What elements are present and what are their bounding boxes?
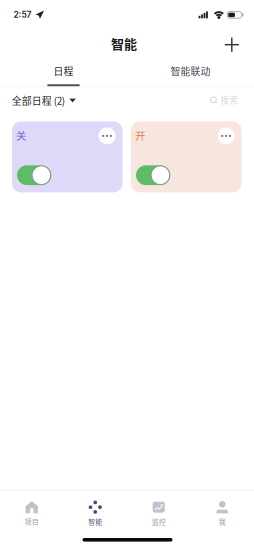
staticText: 全部日程 (2) [12, 93, 65, 108]
button[interactable]: 智能 [63, 499, 127, 528]
staticText: 日程 [53, 64, 73, 78]
button[interactable]: 关 [12, 121, 122, 192]
button[interactable]: 日程 [0, 64, 127, 86]
staticText: 监控 [152, 516, 166, 526]
button[interactable]: 项目 [0, 499, 63, 528]
staticText: 智能联动 [170, 64, 210, 78]
button[interactable]: 搜索 [209, 94, 238, 105]
button[interactable]: 监控 [127, 499, 190, 528]
staticText: 2:57 [14, 9, 32, 20]
button[interactable]: 我 [190, 499, 254, 528]
staticText: 开 [135, 128, 145, 143]
staticText: 项目 [25, 516, 39, 526]
staticText: 搜索 [220, 94, 238, 106]
button[interactable]: Add [218, 31, 246, 59]
staticText: 智能 [88, 516, 102, 526]
staticText: 关 [16, 128, 26, 143]
staticText: 智能 [111, 34, 137, 53]
button[interactable]: 全部日程 (2) [12, 95, 76, 106]
button[interactable]: 开 [131, 121, 241, 192]
staticText: 我 [219, 516, 226, 526]
button[interactable]: 智能联动 [127, 64, 254, 86]
